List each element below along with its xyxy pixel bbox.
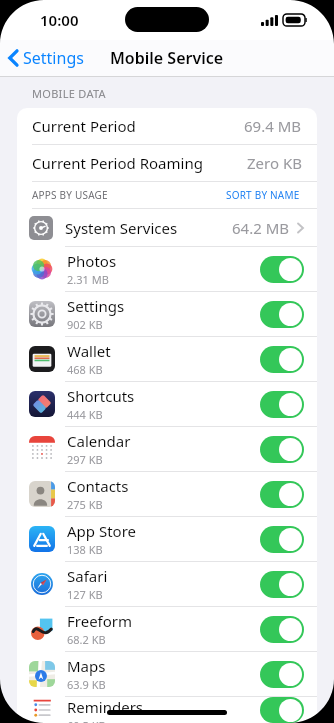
button[interactable]: Contacts xyxy=(17,472,317,516)
staticText: System Services xyxy=(65,218,178,238)
staticText: Current Period Roaming xyxy=(32,153,203,173)
staticText: Reminders xyxy=(67,697,144,717)
button[interactable]: System Services xyxy=(17,209,317,246)
button[interactable]: Toggle mobile data xyxy=(260,571,304,598)
staticText: Wallet xyxy=(67,341,111,361)
button[interactable]: Toggle mobile data xyxy=(260,526,304,553)
button[interactable]: Toggle mobile data xyxy=(260,346,304,373)
staticText: MOBILE DATA xyxy=(32,86,106,101)
staticText: Freeform xyxy=(67,611,133,631)
staticText: 468 KB xyxy=(67,362,103,377)
staticText: 64.2 MB xyxy=(232,218,290,238)
button[interactable]: Current Period xyxy=(17,108,317,144)
button[interactable]: Shortcuts xyxy=(17,382,317,426)
staticText: 275 KB xyxy=(67,497,103,512)
button[interactable]: Toggle mobile data xyxy=(260,256,304,283)
staticText: 902 KB xyxy=(67,317,103,332)
staticText: 127 KB xyxy=(67,587,103,602)
button[interactable]: Current Period Roaming xyxy=(17,145,317,181)
staticText: 138 KB xyxy=(67,542,103,557)
staticText: Settings xyxy=(23,47,84,69)
button[interactable]: Photos xyxy=(17,247,317,291)
staticText: App Store xyxy=(67,521,137,541)
staticText: Safari xyxy=(67,566,108,586)
staticText: Mobile Service xyxy=(110,47,224,69)
button[interactable]: Toggle mobile data xyxy=(260,301,304,328)
button[interactable]: Reminders xyxy=(17,697,317,723)
staticText: Calendar xyxy=(67,431,131,451)
button[interactable]: Maps xyxy=(17,652,317,696)
staticText: 297 KB xyxy=(67,452,103,467)
staticText: 69.4 MB xyxy=(244,116,302,136)
button[interactable]: Safari xyxy=(17,562,317,606)
button[interactable]: Calendar xyxy=(17,427,317,471)
button[interactable]: Settings xyxy=(0,43,90,73)
button[interactable]: Settings xyxy=(17,292,317,336)
button[interactable]: Toggle mobile data xyxy=(260,697,304,723)
staticText: 10:00 xyxy=(40,10,79,30)
button[interactable]: Toggle mobile data xyxy=(260,391,304,418)
staticText: 444 KB xyxy=(67,407,103,422)
button[interactable]: Freeform xyxy=(17,607,317,651)
staticText: SORT BY NAME xyxy=(226,188,300,202)
staticText: Contacts xyxy=(67,476,129,496)
staticText: Settings xyxy=(67,296,125,316)
button[interactable]: SORT BY NAME xyxy=(224,186,302,204)
staticText: 68.2 KB xyxy=(67,632,106,647)
staticText: Current Period xyxy=(32,116,136,136)
staticText: Shortcuts xyxy=(67,386,135,406)
staticText: Zero KB xyxy=(247,153,302,173)
staticText: 60.5 KB xyxy=(67,718,106,723)
button[interactable]: Toggle mobile data xyxy=(260,481,304,508)
button[interactable]: Toggle mobile data xyxy=(260,661,304,688)
button[interactable]: Toggle mobile data xyxy=(260,436,304,463)
staticText: Maps xyxy=(67,656,106,676)
button[interactable]: Toggle mobile data xyxy=(260,616,304,643)
button[interactable]: Wallet xyxy=(17,337,317,381)
staticText: Photos xyxy=(67,251,117,271)
staticText: APPS BY USAGE xyxy=(32,188,108,202)
staticText: 2.31 MB xyxy=(67,272,109,287)
button[interactable]: App Store xyxy=(17,517,317,561)
staticText: 63.9 KB xyxy=(67,677,106,692)
